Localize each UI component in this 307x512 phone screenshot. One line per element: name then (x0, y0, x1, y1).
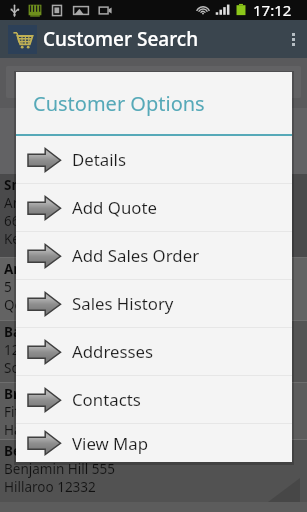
button[interactable]: Search field (6, 66, 301, 98)
button[interactable]: View Map (16, 424, 292, 462)
button[interactable]: Anderson Group (0, 258, 307, 321)
staticText: Anderson Group (4, 260, 114, 278)
staticText: Details (72, 148, 126, 171)
staticText: Hillaroo 12332 (4, 478, 96, 496)
button[interactable]: App home (8, 25, 37, 54)
staticText: 5 Newcomb Road (4, 278, 115, 296)
staticText: Archer Street 24 (4, 194, 107, 212)
staticText: Addresses (72, 340, 154, 363)
staticText: Add Sales Order (72, 244, 200, 267)
staticText: Bakers Delight Co. (4, 323, 128, 341)
staticText: 17:12 (253, 0, 292, 20)
staticText: Customer Search (43, 26, 199, 52)
staticText: Southport 4215 (4, 359, 103, 377)
staticText: View Map (72, 432, 149, 455)
staticText: Hawthorn 3122 (4, 421, 102, 439)
button[interactable]: Contacts (16, 376, 292, 423)
button[interactable]: Add Quote (16, 184, 292, 231)
staticText: Add Quote (72, 196, 157, 219)
staticText: Customer Options (33, 90, 205, 117)
staticText: Bell Hardware (4, 442, 99, 460)
button[interactable]: Addresses (16, 328, 292, 375)
staticText: Kelly Jones (4, 230, 72, 248)
staticText: Fitzroy Lane 8 (4, 403, 92, 421)
staticText: 6612 Lonsdale (4, 212, 96, 230)
button[interactable]: Browning Partners (0, 383, 307, 440)
staticText: Qeenstown 3322 (4, 296, 111, 314)
button[interactable]: Smith & Sons Ltd. (0, 174, 307, 258)
staticText: Browning Partners (4, 385, 131, 403)
button[interactable]: Sales History (16, 280, 292, 327)
button[interactable]: Details (16, 136, 292, 183)
button[interactable]: Bakers Delight Co. (0, 321, 307, 383)
staticText: Smith & Sons Ltd. (4, 176, 122, 194)
staticText: Benjamin Hill 555 (4, 460, 115, 478)
staticText: Sales History (72, 292, 174, 315)
staticText: Contacts (72, 388, 141, 411)
button[interactable]: Bell Hardware (0, 440, 307, 512)
button[interactable]: More options (279, 20, 307, 58)
staticText: 12 Hill Street (4, 341, 85, 359)
button[interactable]: Add Sales Order (16, 232, 292, 279)
